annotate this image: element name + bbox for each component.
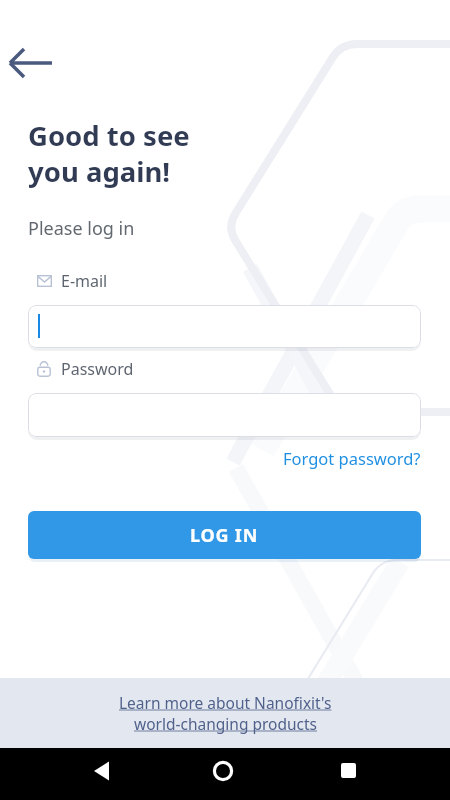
button[interactable]: LOG IN (28, 511, 421, 559)
button[interactable] (28, 305, 421, 348)
button[interactable]: Forgot password? (283, 447, 421, 469)
staticText: world-changing products (134, 713, 318, 734)
staticText: Good to see you again! (28, 117, 190, 190)
staticText: LOG IN (190, 523, 259, 548)
button[interactable] (4, 45, 56, 81)
staticText: Learn more about Nanofixit's (119, 692, 332, 713)
button[interactable]: Learn more about Nanofixit's (0, 678, 450, 748)
button[interactable] (86, 755, 118, 787)
button[interactable] (28, 393, 421, 437)
staticText: Password (61, 358, 134, 380)
button[interactable] (207, 755, 239, 787)
staticText: Please log in (28, 216, 135, 241)
staticText: E-mail (61, 270, 108, 292)
button[interactable] (333, 755, 365, 787)
